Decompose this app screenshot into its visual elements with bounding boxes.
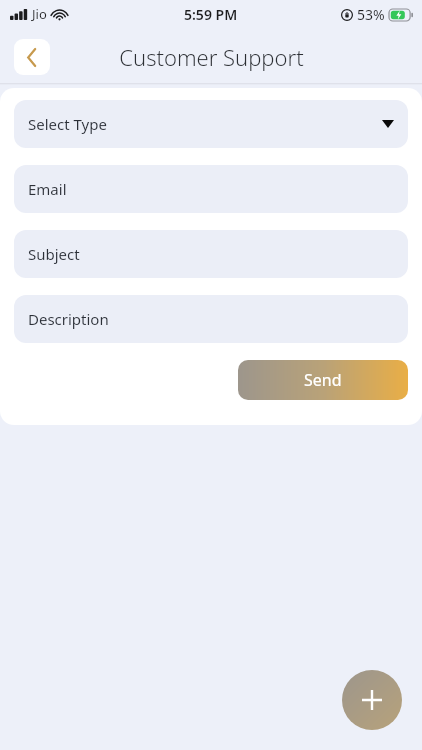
- staticText: 53%: [357, 5, 385, 24]
- button[interactable]: Subject: [14, 230, 408, 278]
- staticText: Select Type: [28, 114, 107, 134]
- button[interactable]: Add: [342, 670, 402, 730]
- button[interactable]: Send: [238, 360, 408, 400]
- staticText: Subject: [28, 244, 80, 264]
- button[interactable]: Back: [14, 39, 50, 75]
- button[interactable]: Email: [14, 165, 408, 213]
- staticText: Jio: [32, 5, 47, 23]
- staticText: Customer Support: [119, 42, 304, 72]
- staticText: Email: [28, 179, 67, 199]
- staticText: Send: [304, 369, 342, 391]
- button[interactable]: Description: [14, 295, 408, 343]
- staticText: 5:59 PM: [184, 5, 238, 24]
- staticText: Description: [28, 309, 109, 329]
- button[interactable]: Select Type: [14, 100, 408, 148]
